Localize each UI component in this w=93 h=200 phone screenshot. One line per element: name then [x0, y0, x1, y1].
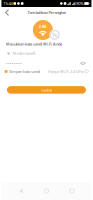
staticText: Masukkan kata sandi Wi-Fi Anda: [6, 41, 62, 46]
staticText: Simpan kata sandi: [9, 69, 40, 74]
button[interactable]: Simpan kata sandi: [4, 69, 40, 74]
button[interactable]: Back: [1, 7, 12, 18]
staticText: ?: [86, 70, 87, 73]
staticText: ••••••••: [6, 61, 22, 66]
button[interactable]: Back: [15, 186, 27, 196]
staticText: 80%: [76, 1, 83, 6]
button[interactable]: Recents: [66, 186, 78, 196]
staticText: Hanya Wi-Fi 2.4 GHz: [48, 69, 84, 74]
button[interactable]: Hanya Wi-Fi 2.4 GHz: [48, 69, 88, 74]
button[interactable]: Lanjut: [7, 86, 86, 94]
staticText: Lanjut: [41, 87, 51, 92]
button[interactable]: Home: [40, 186, 52, 196]
button[interactable]: Show password: [79, 60, 87, 66]
staticText: 2.4G: [39, 23, 47, 29]
staticText: Tambahkan Perangkat: [27, 10, 65, 15]
staticText: 15:44: [3, 1, 12, 6]
staticText: Medan band5: [13, 50, 36, 56]
staticText: 5G: [52, 32, 57, 37]
